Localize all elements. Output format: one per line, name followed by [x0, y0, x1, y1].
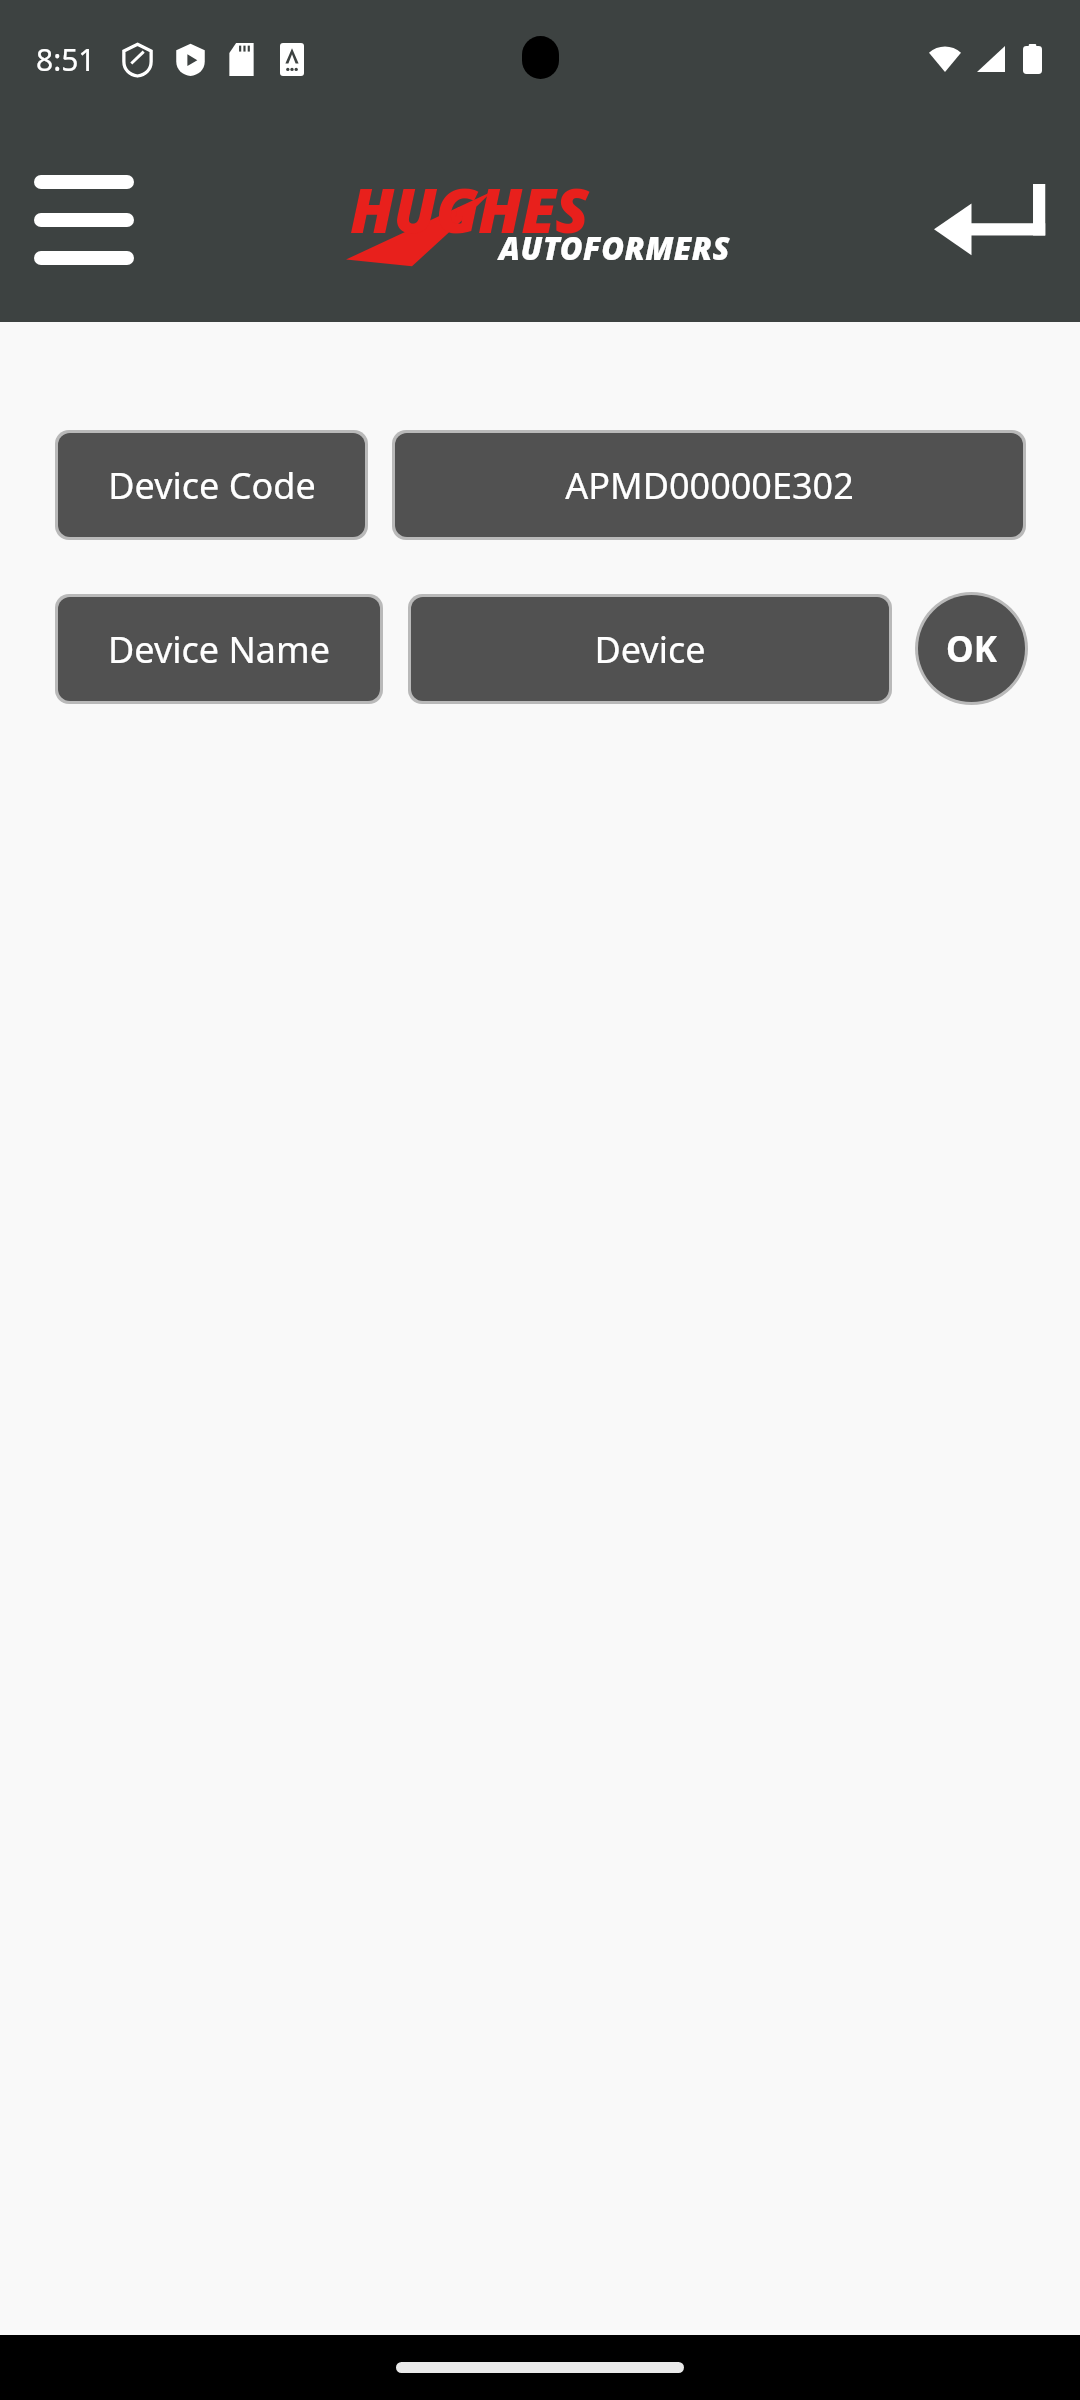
staticText: HUGHES — [350, 167, 589, 251]
button[interactable]: Device — [411, 597, 889, 701]
button[interactable]: Menu — [20, 164, 148, 276]
button[interactable]: OK — [918, 595, 1025, 702]
staticText: Device Name — [108, 625, 330, 674]
button[interactable]: Device Name — [58, 597, 380, 701]
staticText: Device — [594, 625, 706, 674]
button[interactable]: Device Code — [58, 433, 365, 537]
staticText: APMD00000E302 — [565, 461, 854, 510]
staticText: AUTOFORMERS — [499, 227, 730, 269]
staticText: 8:51 — [36, 39, 96, 80]
button[interactable]: Back — [926, 165, 1066, 275]
staticText: OK — [946, 625, 997, 673]
staticText: Device Code — [108, 461, 316, 510]
button[interactable]: APMD00000E302 — [395, 433, 1023, 537]
